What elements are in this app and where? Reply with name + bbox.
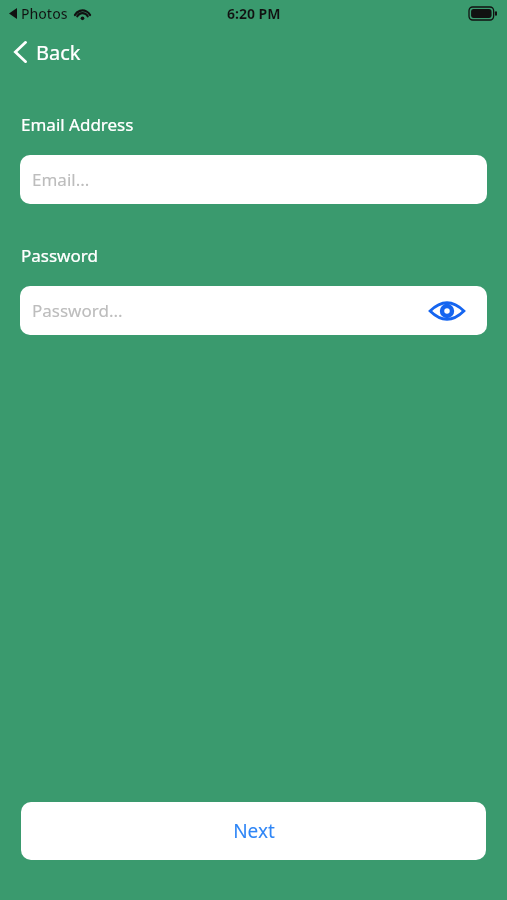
button[interactable]: Password... — [20, 286, 487, 335]
staticText: Password — [21, 244, 98, 267]
staticText: Next — [233, 818, 275, 844]
staticText: Photos — [21, 4, 68, 23]
button[interactable]: Back — [14, 34, 81, 70]
staticText: Email... — [32, 168, 90, 191]
button[interactable]: Next — [21, 802, 486, 860]
button[interactable]: Show password — [427, 291, 467, 331]
button[interactable]: Email... — [20, 155, 487, 204]
staticText: Password... — [32, 299, 123, 322]
staticText: 6:20 PM — [227, 4, 281, 23]
staticText: Back — [36, 39, 81, 66]
staticText: Email Address — [21, 113, 134, 136]
